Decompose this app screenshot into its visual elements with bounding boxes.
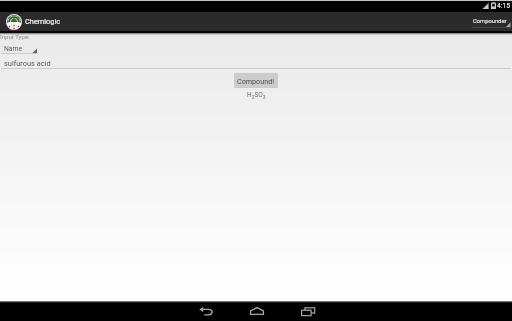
other: Chemlogic app icon <box>6 14 22 30</box>
button[interactable]: Back <box>180 301 231 321</box>
button[interactable]: Compound! <box>234 73 278 88</box>
button[interactable]: Recent apps <box>282 301 333 321</box>
staticText: Compound! <box>237 77 275 85</box>
staticText: Chemlogic <box>25 17 61 26</box>
button[interactable]: Name <box>0 42 38 54</box>
button[interactable]: Home <box>231 301 282 321</box>
button[interactable]: Compounder <box>472 12 512 32</box>
staticText: Compounder <box>473 18 512 25</box>
button[interactable]: Chemlogic app icon <box>0 12 64 32</box>
staticText: sulfurous acid <box>4 59 51 68</box>
button[interactable]: sulfurous acid <box>0 57 512 69</box>
staticText: Input Type: <box>0 33 30 40</box>
staticText: 4:15 <box>497 2 510 10</box>
staticText: H2SO3 <box>247 91 266 101</box>
staticText: Name <box>4 45 23 53</box>
